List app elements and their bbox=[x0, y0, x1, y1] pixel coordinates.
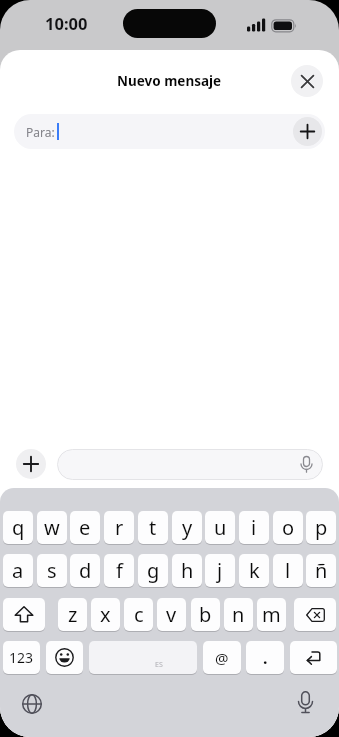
staticText: a bbox=[12, 557, 24, 584]
button[interactable]: s bbox=[37, 554, 67, 587]
button[interactable]: Para: bbox=[14, 114, 325, 149]
staticText: t bbox=[149, 514, 157, 541]
button[interactable]: @ bbox=[203, 641, 241, 674]
button[interactable] bbox=[3, 598, 45, 631]
staticText: h bbox=[181, 557, 194, 584]
button[interactable]: f bbox=[104, 554, 134, 587]
staticText: i bbox=[251, 514, 257, 541]
staticText: @ bbox=[215, 648, 229, 668]
button[interactable]: z bbox=[58, 598, 87, 631]
staticText: w bbox=[44, 514, 60, 541]
staticText: z bbox=[68, 601, 78, 628]
button[interactable]: l bbox=[273, 554, 303, 587]
staticText: 123 bbox=[9, 648, 34, 667]
button[interactable] bbox=[294, 598, 336, 631]
staticText: f bbox=[116, 557, 123, 584]
button[interactable]: y bbox=[172, 511, 202, 544]
button[interactable]: i bbox=[239, 511, 269, 544]
button[interactable]: k bbox=[239, 554, 269, 587]
button[interactable]: v bbox=[157, 598, 186, 631]
staticText: ES bbox=[155, 660, 163, 670]
staticText: d bbox=[79, 557, 92, 584]
button[interactable] bbox=[297, 691, 314, 715]
staticText: b bbox=[199, 601, 212, 628]
staticText: . bbox=[263, 647, 268, 669]
button[interactable] bbox=[293, 117, 322, 146]
staticText: Nuevo mensaje bbox=[117, 72, 222, 90]
button[interactable] bbox=[57, 449, 323, 480]
staticText: v bbox=[166, 601, 177, 628]
button[interactable]: d bbox=[70, 554, 100, 587]
button[interactable] bbox=[291, 65, 323, 97]
button[interactable] bbox=[21, 693, 43, 715]
button[interactable]: n bbox=[224, 598, 253, 631]
button[interactable]: ES bbox=[89, 641, 197, 674]
staticText: c bbox=[134, 601, 144, 628]
staticText: Para: bbox=[26, 124, 55, 140]
button[interactable]: a bbox=[3, 554, 33, 587]
staticText: j bbox=[217, 557, 223, 584]
button[interactable]: w bbox=[37, 511, 67, 544]
button[interactable]: m bbox=[257, 598, 286, 631]
staticText: g bbox=[147, 557, 160, 584]
staticText: m bbox=[262, 601, 281, 628]
staticText: q bbox=[12, 514, 25, 541]
button[interactable] bbox=[16, 449, 46, 479]
button[interactable]: ñ bbox=[306, 554, 336, 587]
staticText: l bbox=[285, 557, 291, 584]
staticText: r bbox=[115, 514, 124, 541]
button[interactable]: c bbox=[124, 598, 153, 631]
button[interactable]: r bbox=[104, 511, 134, 544]
button[interactable]: q bbox=[3, 511, 33, 544]
button[interactable] bbox=[290, 641, 337, 674]
button[interactable]: h bbox=[172, 554, 202, 587]
button[interactable]: p bbox=[306, 511, 336, 544]
button[interactable]: j bbox=[205, 554, 235, 587]
staticText: 10:00 bbox=[45, 12, 88, 34]
button[interactable]: 123 bbox=[3, 641, 40, 674]
staticText: k bbox=[249, 557, 260, 584]
button[interactable] bbox=[46, 641, 83, 674]
staticText: n bbox=[232, 601, 245, 628]
staticText: p bbox=[315, 514, 328, 541]
button[interactable]: b bbox=[191, 598, 220, 631]
staticText: ñ bbox=[315, 557, 328, 584]
button[interactable]: t bbox=[138, 511, 168, 544]
button[interactable]: . bbox=[246, 641, 284, 674]
staticText: o bbox=[282, 514, 295, 541]
button[interactable]: g bbox=[138, 554, 168, 587]
staticText: u bbox=[214, 514, 227, 541]
button[interactable]: u bbox=[205, 511, 235, 544]
button[interactable]: e bbox=[70, 511, 100, 544]
staticText: y bbox=[182, 514, 193, 541]
staticText: e bbox=[79, 514, 91, 541]
staticText: s bbox=[47, 557, 57, 584]
button[interactable]: x bbox=[91, 598, 120, 631]
staticText: x bbox=[100, 601, 111, 628]
button[interactable]: o bbox=[273, 511, 303, 544]
